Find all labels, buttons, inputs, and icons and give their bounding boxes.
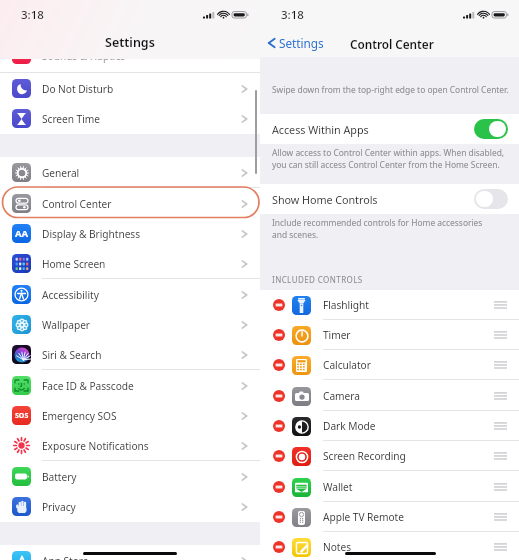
button[interactable]: Accessibility bbox=[0, 279, 260, 310]
staticText: Display & Brightness bbox=[42, 227, 141, 241]
staticText: Do Not Disturb bbox=[42, 82, 114, 96]
button[interactable]: Screen Time bbox=[0, 103, 260, 134]
button[interactable]: Remove Notes bbox=[260, 532, 519, 560]
staticText: Apple TV Remote bbox=[323, 510, 404, 524]
staticText: Siri & Search bbox=[42, 348, 102, 362]
staticText: Accessibility bbox=[42, 288, 99, 302]
staticText: App Store bbox=[42, 554, 89, 560]
other: Reorder Timer bbox=[494, 331, 507, 339]
staticText: 3:18 bbox=[21, 7, 44, 23]
staticText: Timer bbox=[323, 328, 351, 342]
other: Remove Apple TV Remote bbox=[273, 511, 285, 523]
button[interactable]: Remove Apple TV Remote bbox=[260, 502, 519, 532]
staticText: AA bbox=[15, 227, 29, 240]
other: Reorder Apple TV Remote bbox=[494, 513, 507, 521]
button[interactable]: Remove Flashlight bbox=[260, 290, 519, 320]
button[interactable]: General bbox=[0, 157, 260, 188]
staticText: Camera bbox=[323, 389, 360, 403]
staticText: Screen Recording bbox=[323, 449, 406, 463]
other: Reorder Notes bbox=[494, 543, 507, 551]
other: Reorder Calculator bbox=[494, 361, 507, 369]
other: Reorder Wallet bbox=[494, 483, 507, 491]
button[interactable]: AA bbox=[0, 218, 260, 249]
staticText: Battery bbox=[42, 470, 77, 484]
other: Remove Camera bbox=[273, 390, 285, 402]
button[interactable]: Home Screen bbox=[0, 248, 260, 279]
button[interactable]: Do Not Disturb bbox=[0, 73, 260, 104]
button[interactable]: Remove Timer bbox=[260, 320, 519, 350]
staticText: Control Center bbox=[350, 36, 434, 52]
staticText: Screen Time bbox=[42, 112, 100, 126]
staticText: Settings bbox=[105, 34, 155, 51]
button[interactable]: Battery bbox=[0, 461, 260, 492]
other: Remove Dark Mode bbox=[273, 420, 285, 432]
staticText: Notes bbox=[323, 540, 351, 554]
button[interactable]: Remove Screen Recording bbox=[260, 441, 519, 471]
staticText: Calculator bbox=[323, 358, 371, 372]
staticText: Home Screen bbox=[42, 257, 106, 271]
button[interactable]: App Store bbox=[0, 545, 260, 560]
other: Remove Wallet bbox=[273, 481, 285, 493]
staticText: Exposure Notifications bbox=[42, 439, 149, 453]
button[interactable]: Remove Dark Mode bbox=[260, 411, 519, 441]
button[interactable]: Face ID & Passcode bbox=[0, 370, 260, 401]
button[interactable]: Access Within Apps bbox=[260, 114, 519, 144]
button[interactable]: Remove Calculator bbox=[260, 350, 519, 380]
button[interactable]: Settings bbox=[267, 33, 324, 53]
staticText: Swipe down from the top-right edge to op… bbox=[272, 84, 509, 96]
button[interactable]: Privacy bbox=[0, 491, 260, 522]
staticText: INCLUDED CONTROLS bbox=[272, 274, 363, 285]
button[interactable]: Show Home Controls bbox=[260, 184, 519, 214]
staticText: Settings bbox=[279, 35, 324, 51]
staticText: Allow access to Control Center within ap… bbox=[272, 147, 505, 171]
other: Remove Flashlight bbox=[273, 299, 285, 311]
other: Remove Screen Recording bbox=[273, 450, 285, 462]
staticText: Wallet bbox=[323, 480, 353, 494]
staticText: Face ID & Passcode bbox=[42, 379, 134, 393]
button[interactable]: Exposure Notifications bbox=[0, 430, 260, 461]
staticText: Include recommended controls for Home ac… bbox=[272, 217, 483, 241]
other: Reorder Flashlight bbox=[494, 301, 507, 309]
staticText: SOS bbox=[15, 411, 29, 421]
staticText: 3:18 bbox=[281, 7, 304, 23]
other: Reorder Screen Recording bbox=[494, 452, 507, 460]
button[interactable]: SOS bbox=[0, 400, 260, 431]
staticText: Dark Mode bbox=[323, 419, 376, 433]
button[interactable]: Remove Wallet bbox=[260, 472, 519, 502]
other: Reorder Camera bbox=[494, 392, 507, 400]
other: Reorder Dark Mode bbox=[494, 422, 507, 430]
other: Remove Notes bbox=[273, 541, 285, 553]
button[interactable]: Siri & Search bbox=[0, 339, 260, 370]
other: Remove Calculator bbox=[273, 359, 285, 371]
staticText: General bbox=[42, 166, 80, 180]
staticText: Emergency SOS bbox=[42, 409, 117, 423]
button[interactable]: Wallpaper bbox=[0, 309, 260, 340]
staticText: Wallpaper bbox=[42, 318, 90, 332]
staticText: Privacy bbox=[42, 500, 76, 514]
other: Remove Timer bbox=[273, 329, 285, 341]
staticText: Show Home Controls bbox=[272, 192, 378, 207]
staticText: Control Center bbox=[42, 197, 112, 211]
staticText: Access Within Apps bbox=[272, 122, 369, 137]
button[interactable]: Remove Camera bbox=[260, 381, 519, 411]
button[interactable]: Control Center bbox=[0, 188, 260, 219]
staticText: Sounds & Haptics bbox=[42, 49, 126, 63]
staticText: Flashlight bbox=[323, 298, 369, 312]
